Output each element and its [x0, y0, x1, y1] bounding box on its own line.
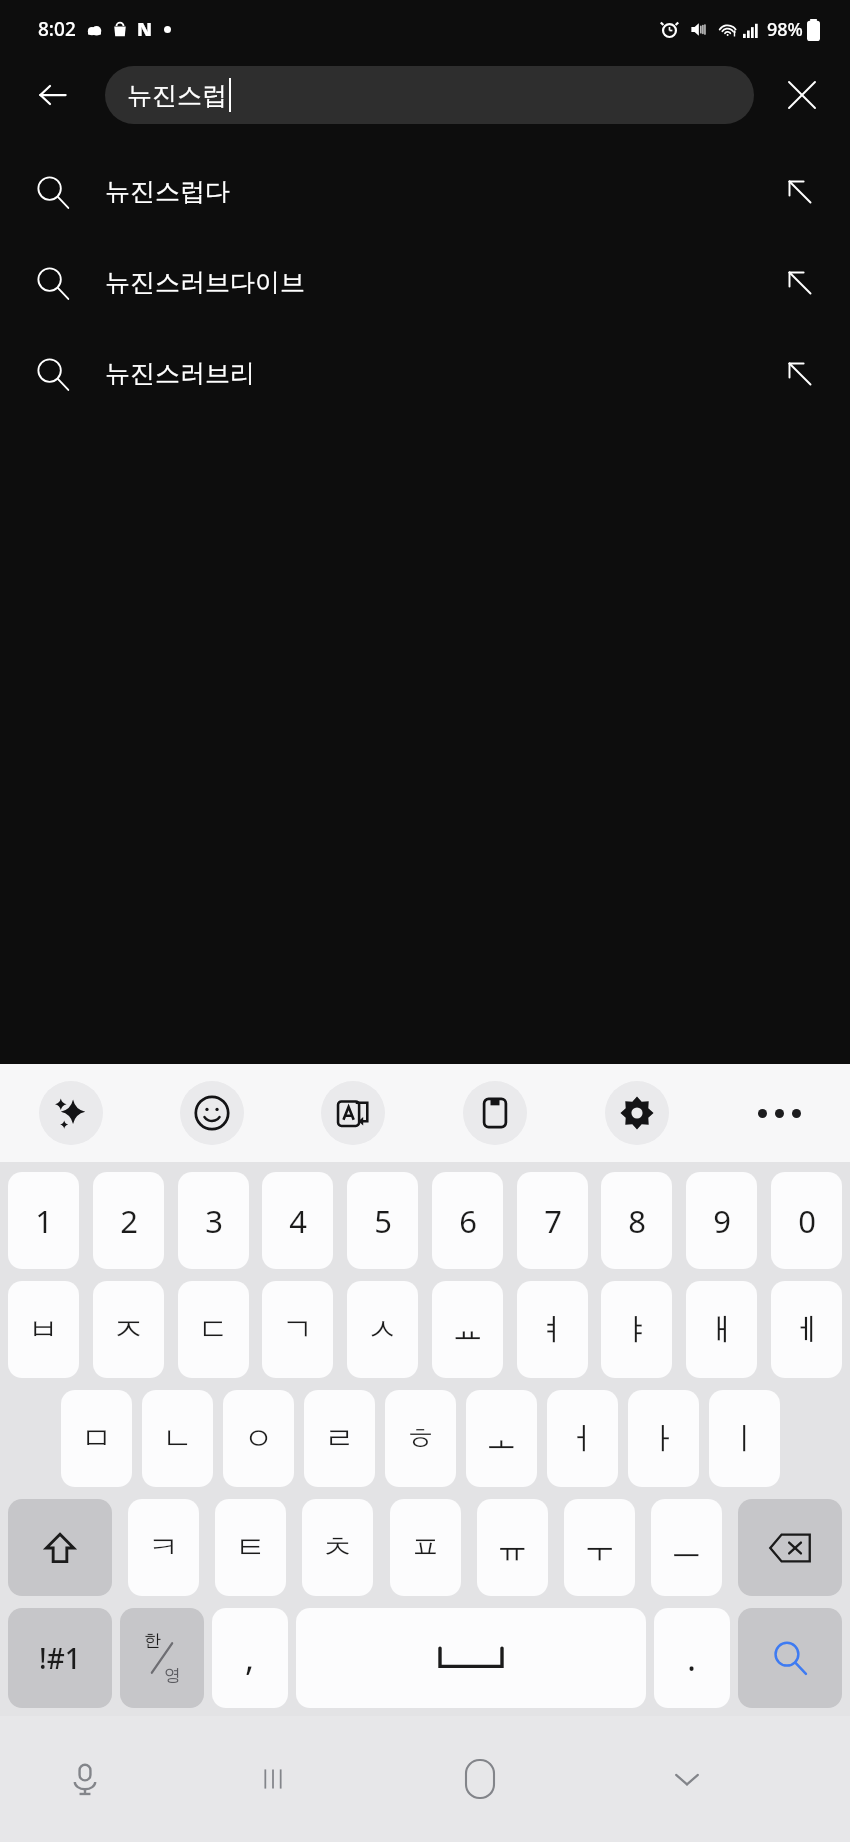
button[interactable]: ㅌ [215, 1499, 286, 1596]
button[interactable]: 뉴진스럽 [105, 66, 754, 124]
button[interactable]: ㅅ [347, 1281, 418, 1378]
button[interactable]: ㄱ [262, 1281, 333, 1378]
button[interactable]: 3 [178, 1172, 249, 1269]
staticText: 한 [144, 1630, 161, 1651]
staticText: 9 [713, 1200, 731, 1242]
staticText: !#1 [39, 1639, 81, 1677]
button[interactable]: ㅂ [8, 1281, 79, 1378]
staticText: 4 [289, 1200, 307, 1242]
staticText: ㅅ [367, 1310, 398, 1349]
button[interactable]: Shift [8, 1499, 112, 1596]
button[interactable]: !#1 [8, 1608, 112, 1708]
staticText: ㅣ [729, 1419, 760, 1458]
staticText: ㄹ [324, 1419, 355, 1458]
button[interactable]: Search [738, 1608, 842, 1708]
button[interactable]: ㅑ [601, 1281, 672, 1378]
button[interactable]: ㅏ [628, 1390, 699, 1487]
staticText: 뉴진스러브다이브 [105, 267, 305, 298]
staticText: ㅜ [584, 1528, 615, 1567]
button[interactable]: ㅣ [709, 1390, 780, 1487]
staticText: ㅛ [452, 1310, 483, 1349]
button[interactable]: Settings [566, 1064, 708, 1162]
button[interactable]: ㄷ [178, 1281, 249, 1378]
button[interactable]: 뉴진스러브다이브 [0, 237, 850, 328]
button[interactable]: Emoji [141, 1064, 282, 1162]
staticText: ㄴ [162, 1419, 193, 1458]
button[interactable]: 6 [432, 1172, 503, 1269]
button[interactable]: Clear [754, 58, 850, 132]
button[interactable]: Clipboard [424, 1064, 566, 1162]
staticText: ㅐ [706, 1310, 737, 1349]
button[interactable]: 8 [601, 1172, 672, 1269]
staticText: ㄱ [282, 1310, 313, 1349]
button[interactable]: ㅜ [564, 1499, 635, 1596]
staticText: 7 [544, 1200, 562, 1242]
button[interactable]: ㅊ [302, 1499, 373, 1596]
button[interactable]: ㄴ [142, 1390, 213, 1487]
staticText: ㅕ [537, 1310, 568, 1349]
button[interactable]: ㅡ [651, 1499, 722, 1596]
button[interactable]: ㅠ [477, 1499, 548, 1596]
button[interactable]: ㅓ [547, 1390, 618, 1487]
button[interactable]: 4 [262, 1172, 333, 1269]
button[interactable]: Korean English toggle [120, 1608, 204, 1708]
staticText: . [687, 1635, 697, 1681]
staticText: ㅈ [113, 1310, 144, 1349]
button[interactable]: ㅁ [61, 1390, 132, 1487]
staticText: ㅍ [410, 1528, 441, 1567]
button[interactable]: ㅈ [93, 1281, 164, 1378]
button[interactable]: 0 [771, 1172, 842, 1269]
button[interactable]: ㅎ [385, 1390, 456, 1487]
button[interactable]: . [654, 1608, 730, 1708]
button[interactable]: ㅔ [771, 1281, 842, 1378]
button[interactable]: Space [296, 1608, 646, 1708]
button[interactable]: More [708, 1064, 850, 1162]
button[interactable]: Voice input [0, 1716, 170, 1842]
button[interactable]: , [212, 1608, 288, 1708]
staticText: ㅑ [621, 1310, 652, 1349]
staticText: 5 [374, 1200, 392, 1242]
button[interactable]: 7 [517, 1172, 588, 1269]
staticText: ㅡ [671, 1528, 702, 1567]
staticText: ㅋ [148, 1528, 179, 1567]
staticText: ㅎ [405, 1419, 436, 1458]
button[interactable]: Home [376, 1716, 583, 1842]
button[interactable]: ㅍ [390, 1499, 461, 1596]
button[interactable]: 9 [686, 1172, 757, 1269]
button[interactable]: 뉴진스러브리 [0, 328, 850, 419]
staticText: ㅔ [791, 1310, 822, 1349]
button[interactable]: Sparkle [0, 1064, 141, 1162]
button[interactable]: ㅇ [223, 1390, 294, 1487]
staticText: 뉴진스러브리 [105, 358, 255, 389]
button[interactable]: Back [0, 58, 105, 132]
staticText: ㅇ [243, 1419, 274, 1458]
staticText: ㅠ [497, 1528, 528, 1567]
staticText: ㅁ [81, 1419, 112, 1458]
staticText: ㅂ [28, 1310, 59, 1349]
button[interactable]: ㅛ [432, 1281, 503, 1378]
button[interactable]: ㅐ [686, 1281, 757, 1378]
staticText: 뉴진스럽 [127, 80, 227, 111]
button[interactable]: ㅗ [466, 1390, 537, 1487]
button[interactable]: 뉴진스럽다 [0, 146, 850, 237]
staticText: 6 [459, 1200, 477, 1242]
staticText: 3 [205, 1200, 223, 1242]
button[interactable]: ㅋ [128, 1499, 199, 1596]
button[interactable]: 5 [347, 1172, 418, 1269]
button[interactable]: ㅕ [517, 1281, 588, 1378]
button[interactable]: Recents [170, 1716, 376, 1842]
button[interactable]: 1 [8, 1172, 79, 1269]
staticText: 8:02 [38, 16, 76, 42]
staticText: 2 [120, 1200, 138, 1242]
button[interactable]: ㄹ [304, 1390, 375, 1487]
button[interactable]: Translate [282, 1064, 424, 1162]
staticText: 1 [35, 1200, 53, 1242]
staticText: 98% [767, 17, 803, 42]
staticText: ㅊ [322, 1528, 353, 1567]
button[interactable]: 2 [93, 1172, 164, 1269]
staticText: ㅓ [567, 1419, 598, 1458]
button[interactable]: Backspace [738, 1499, 842, 1596]
staticText: 뉴진스럽다 [105, 176, 230, 207]
button[interactable]: Hide keyboard [583, 1716, 790, 1842]
staticText: N [137, 17, 153, 42]
